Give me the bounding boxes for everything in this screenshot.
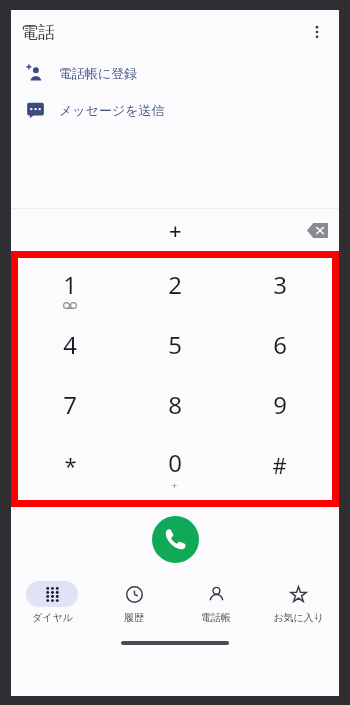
button[interactable]: ダイヤル [11,579,93,637]
button[interactable]: 履歴 [93,579,175,637]
staticText: # [272,450,287,480]
button[interactable]: 4 [18,318,122,378]
staticText: 4 [63,328,77,361]
staticText: 8 [168,388,182,421]
staticText: 履歴 [124,611,144,624]
staticText: + [169,215,182,245]
button[interactable]: お気に入り [257,579,339,637]
button[interactable]: 0 [122,438,227,498]
button[interactable]: 3 [227,258,332,318]
staticText: 5 [168,328,182,361]
button[interactable]: 電話帳 [175,579,257,637]
staticText: ダイヤル [32,611,73,624]
button[interactable]: # [227,438,332,498]
staticText: メッセージを送信 [59,102,165,118]
staticText: 2 [168,268,182,301]
staticText: 9 [273,388,287,421]
staticText: 電話 [21,22,55,43]
button[interactable]: More options [300,15,334,49]
staticText: 3 [273,268,287,301]
staticText: 電話帳 [201,611,231,624]
button[interactable]: 5 [122,318,227,378]
button[interactable]: * [18,438,122,498]
button[interactable]: Call [152,516,199,563]
button[interactable]: 8 [122,378,227,438]
staticText: 0 [168,446,182,479]
button[interactable]: 6 [227,318,332,378]
staticText: 7 [63,388,77,421]
staticText: * [64,450,77,480]
button[interactable]: 7 [18,378,122,438]
staticText: お気に入り [273,611,324,624]
button[interactable]: 2 [122,258,227,318]
staticText: 電話帳に登録 [59,65,138,81]
staticText: 6 [273,328,287,361]
staticText: 1 [63,268,77,301]
staticText: + [172,479,178,491]
other: Add to contacts [11,54,59,91]
button[interactable]: Backspace [301,214,333,246]
button[interactable]: 1 [18,258,122,318]
button[interactable]: Send message [11,91,339,128]
button[interactable]: Add to contacts [11,54,339,91]
other: Send message [11,91,59,128]
button[interactable]: 9 [227,378,332,438]
